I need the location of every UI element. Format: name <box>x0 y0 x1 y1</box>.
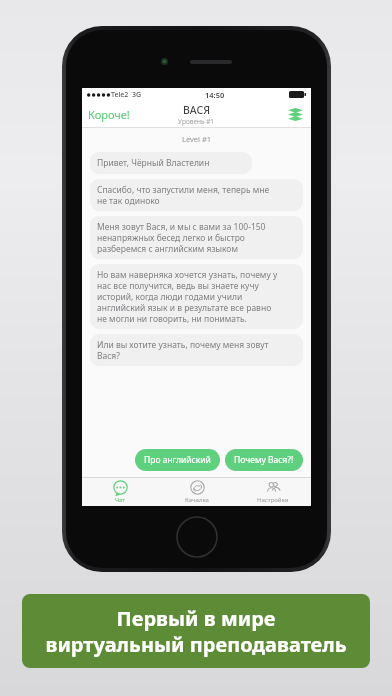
staticText: Привет, Чёрный Властелин <box>97 157 210 169</box>
staticText: Короче! <box>88 107 130 122</box>
button[interactable]: Настройки <box>235 478 311 506</box>
staticText: Меня зовут Вася, и мы с вами за 100-150 … <box>97 221 266 254</box>
button[interactable]: Спасибо, что запустили меня, теперь мне … <box>90 179 303 211</box>
button[interactable]: Первый в мире виртуальный преподаватель <box>22 594 370 668</box>
staticText: Почему Вася?! <box>234 454 294 466</box>
button[interactable]: Уровни <box>285 104 305 124</box>
button[interactable]: Качалка <box>159 478 235 506</box>
button[interactable]: Чат <box>82 478 159 506</box>
staticText: Настройки <box>257 496 289 504</box>
staticText: 3G <box>132 90 142 100</box>
staticText: Но вам наверняка хочется узнать, почему … <box>97 269 278 324</box>
staticText: Или вы хотите узнать, почему меня зовут … <box>97 339 269 361</box>
staticText: Качалка <box>185 496 209 504</box>
staticText: Level #1 <box>182 134 212 144</box>
button[interactable]: Привет, Чёрный Властелин <box>90 152 252 174</box>
staticText: Про английский <box>144 454 211 466</box>
button[interactable]: Меня зовут Вася, и мы с вами за 100-150 … <box>90 216 303 259</box>
staticText: Первый в мире виртуальный преподаватель <box>45 605 347 657</box>
button[interactable]: Про английский <box>135 449 220 471</box>
staticText: Tele2 <box>111 90 129 100</box>
button[interactable]: Но вам наверняка хочется узнать, почему … <box>90 264 303 329</box>
button[interactable]: Почему Вася?! <box>225 449 303 471</box>
staticText: Уровень #1 <box>178 117 215 126</box>
staticText: ВАСЯ <box>183 103 211 117</box>
staticText: Чат <box>115 496 126 504</box>
button[interactable]: Короче! <box>88 107 130 122</box>
button[interactable]: Или вы хотите узнать, почему меня зовут … <box>90 334 303 366</box>
staticText: 14:50 <box>205 90 225 100</box>
staticText: Спасибо, что запустили меня, теперь мне … <box>97 184 270 206</box>
